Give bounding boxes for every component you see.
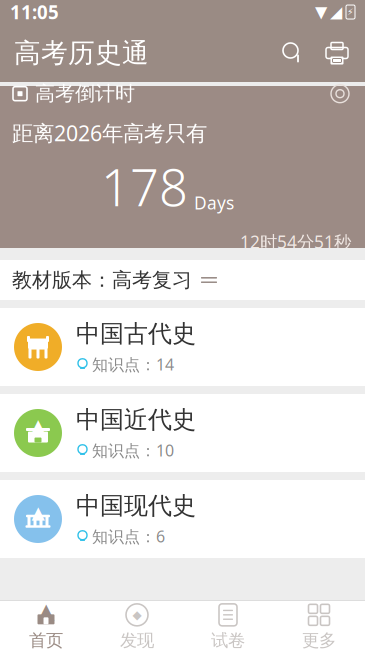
staticText: ▼ [315, 3, 327, 21]
button[interactable]: ▲ [0, 480, 365, 558]
staticText: 发现 [120, 630, 154, 651]
staticText: ▲ [38, 599, 54, 623]
button[interactable]: ▲ [0, 394, 365, 472]
staticText: 高考倒计时 [35, 81, 135, 106]
staticText: 更多 [302, 630, 336, 651]
staticText: 教材版本：高考复习 [12, 268, 192, 292]
button[interactable]: 教材版本：高考复习 [0, 260, 365, 300]
button[interactable]: 中国古代史 [0, 308, 365, 386]
button[interactable]: 搜索 [271, 31, 315, 75]
staticText: 11:05 [10, 0, 59, 24]
button[interactable]: ◆ [91, 600, 182, 652]
staticText: 高考历史通 [14, 37, 149, 69]
staticText: ▲ [31, 503, 44, 522]
staticText: Days [194, 191, 234, 214]
staticText: 中国现代史 [76, 491, 196, 521]
staticText: 首页 [29, 630, 63, 651]
staticText: ◢ [330, 3, 342, 21]
staticText: 知识点：10 [92, 440, 174, 461]
staticText: ◆ [132, 608, 141, 622]
staticText: ▲ [30, 415, 45, 437]
button[interactable]: 打印 [315, 31, 359, 75]
staticText: 知识点：6 [92, 526, 165, 547]
staticText: 距离2026年高考只有 [12, 119, 207, 147]
button[interactable]: 试卷 [182, 600, 273, 652]
staticText: 12时54分51秒 [240, 230, 351, 253]
staticText: 中国近代史 [76, 405, 196, 435]
staticText: 知识点：14 [92, 354, 174, 375]
button[interactable]: 更多 [273, 600, 364, 652]
staticText: ⚡︎ [347, 7, 354, 17]
staticText: 178 [101, 153, 188, 220]
staticText: 中国古代史 [76, 319, 196, 349]
button[interactable]: ▲ [0, 600, 91, 652]
staticText: 试卷 [211, 630, 245, 651]
button[interactable]: 设置 [323, 77, 357, 111]
